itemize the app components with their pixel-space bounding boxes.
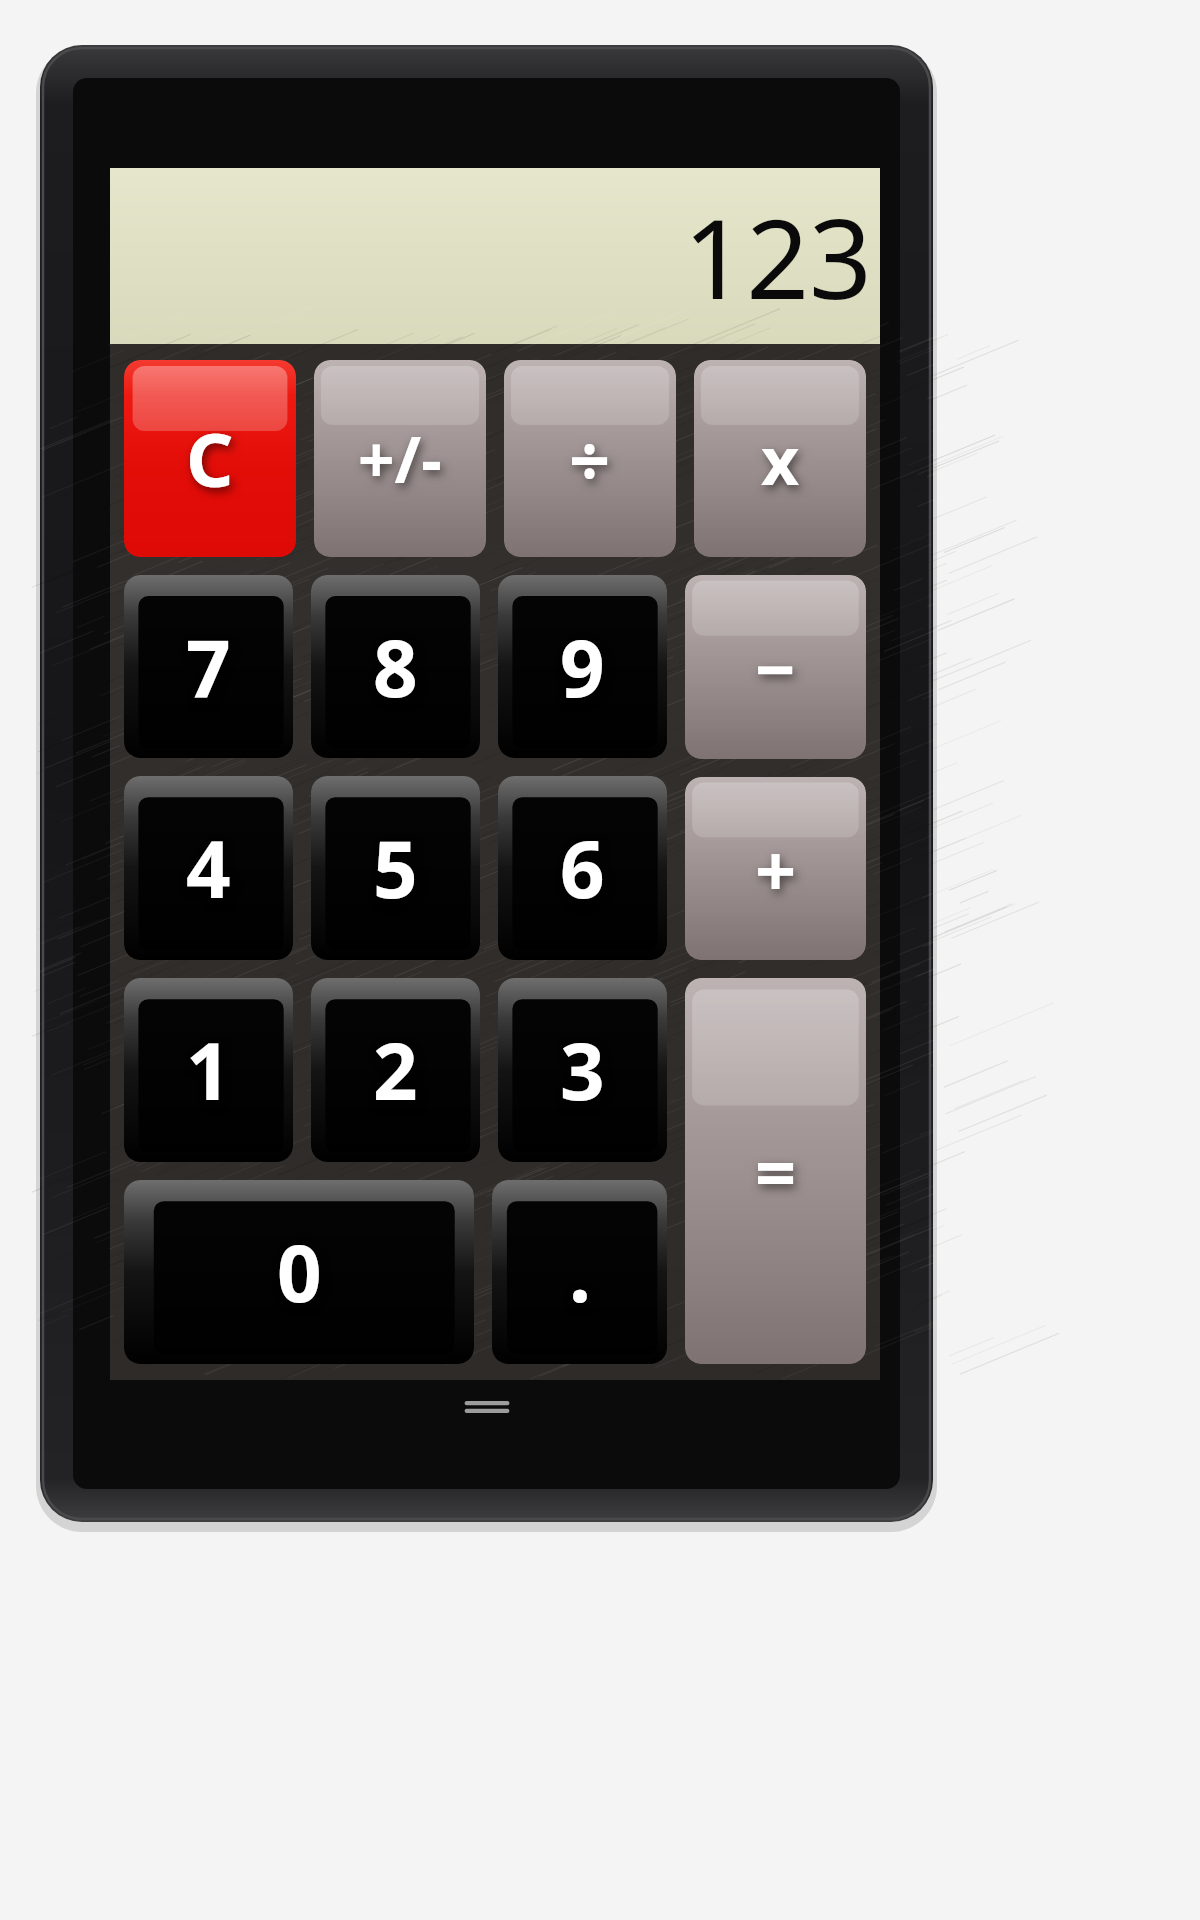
staticText: 9 bbox=[560, 614, 605, 720]
staticText: − bbox=[755, 620, 796, 715]
button[interactable]: C bbox=[124, 360, 296, 557]
staticText: + bbox=[755, 820, 797, 918]
staticText: ÷ bbox=[569, 410, 611, 508]
button[interactable]: 9 bbox=[498, 575, 667, 758]
staticText: 6 bbox=[560, 815, 605, 921]
button[interactable]: 7 bbox=[124, 575, 293, 758]
staticText: = bbox=[755, 1122, 797, 1220]
button[interactable]: 1 bbox=[124, 978, 293, 1162]
staticText: 2 bbox=[373, 1017, 418, 1123]
button[interactable]: +/- bbox=[314, 360, 486, 557]
button[interactable]: 3 bbox=[498, 978, 667, 1162]
button[interactable]: = bbox=[685, 978, 866, 1364]
staticText: 3 bbox=[560, 1017, 605, 1123]
staticText: 4 bbox=[186, 815, 231, 921]
button[interactable]: . bbox=[492, 1180, 667, 1364]
button[interactable]: 0 bbox=[124, 1180, 474, 1364]
staticText: . bbox=[569, 1219, 591, 1325]
button[interactable]: x bbox=[694, 360, 866, 557]
button[interactable]: 5 bbox=[311, 776, 480, 960]
staticText: 8 bbox=[373, 614, 418, 720]
button[interactable]: − bbox=[685, 575, 866, 759]
staticText: 1 bbox=[186, 1017, 231, 1123]
staticText: C bbox=[186, 408, 234, 509]
staticText: x bbox=[761, 414, 800, 504]
staticText: 7 bbox=[186, 614, 231, 720]
button[interactable]: 2 bbox=[311, 978, 480, 1162]
staticText: +/- bbox=[358, 415, 442, 502]
staticText: 0 bbox=[277, 1219, 322, 1325]
staticText: 5 bbox=[373, 815, 418, 921]
button[interactable]: + bbox=[685, 777, 866, 960]
button[interactable]: 4 bbox=[124, 776, 293, 960]
button[interactable]: 8 bbox=[311, 575, 480, 758]
staticText: 123 bbox=[683, 181, 872, 331]
button[interactable]: Home bbox=[459, 1394, 515, 1420]
button[interactable]: ÷ bbox=[504, 360, 676, 557]
button[interactable]: 6 bbox=[498, 776, 667, 960]
